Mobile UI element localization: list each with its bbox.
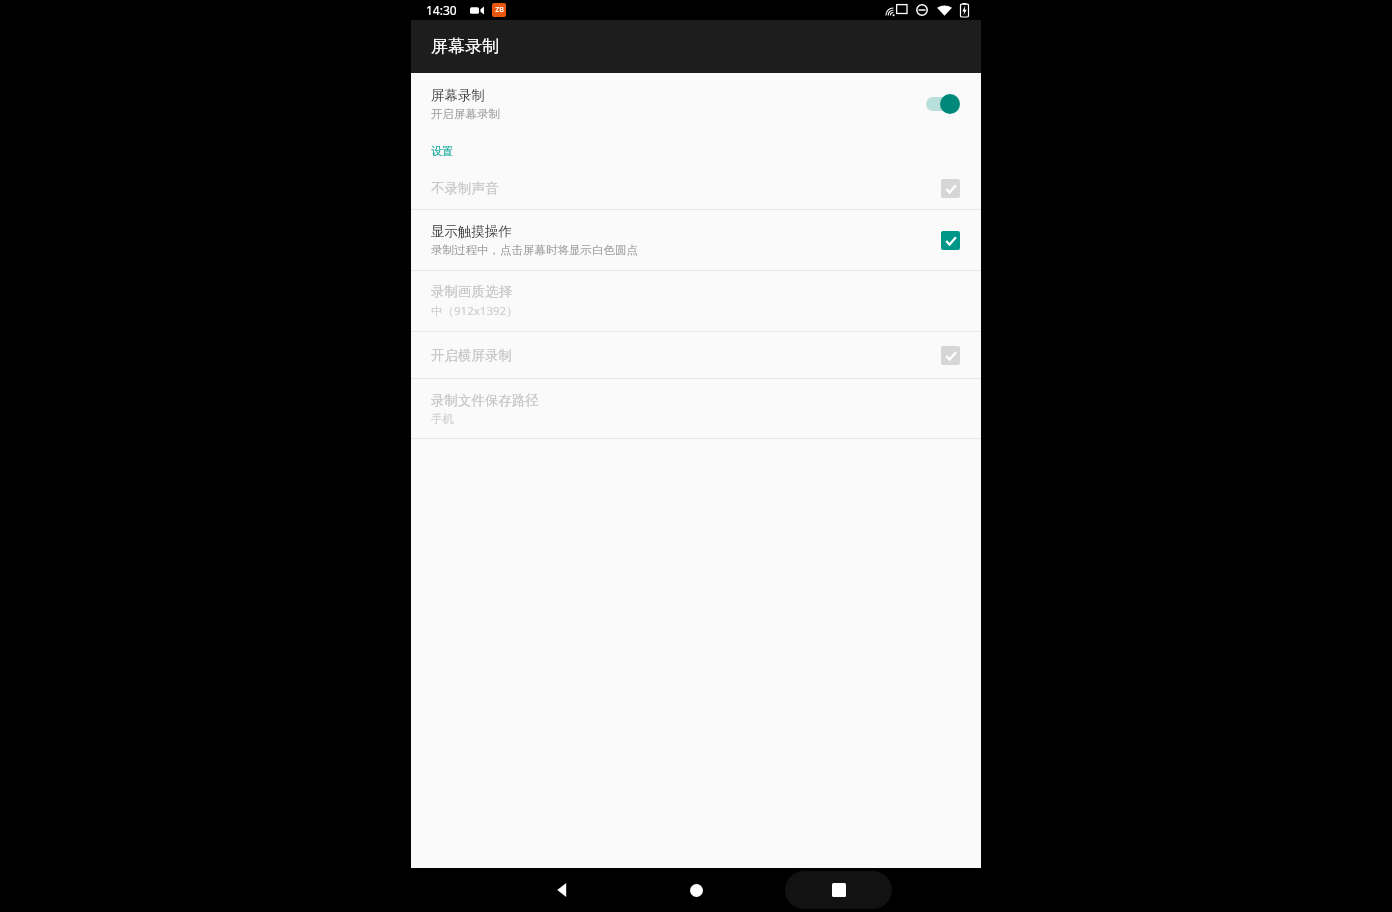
button[interactable]: 已选中: [941, 231, 960, 250]
staticText: 手机: [431, 412, 454, 426]
staticText: 录制画质选择: [431, 283, 512, 300]
staticText: 屏幕录制: [431, 36, 499, 57]
staticText: 屏幕录制: [431, 87, 485, 104]
button[interactable]: Back: [533, 868, 591, 912]
staticText: 中（912x1392）: [431, 303, 518, 319]
button[interactable]: Home: [667, 868, 725, 912]
button[interactable]: 屏幕录制 开关: [926, 94, 960, 114]
button[interactable]: 复选框: [941, 346, 960, 365]
staticText: ZB: [495, 5, 504, 15]
button[interactable]: 不录制声音: [411, 167, 981, 209]
button[interactable]: 录制画质选择: [411, 271, 981, 331]
staticText: 显示触摸操作: [431, 223, 512, 240]
staticText: 开启屏幕录制: [431, 107, 500, 121]
staticText: 录制文件保存路径: [431, 392, 539, 409]
staticText: 不录制声音: [431, 180, 499, 197]
staticText: 开启横屏录制: [431, 347, 512, 364]
button[interactable]: 复选框: [941, 179, 960, 198]
staticText: 14:30: [426, 2, 457, 18]
button[interactable]: 显示触摸操作: [411, 210, 981, 270]
button[interactable]: 开启横屏录制: [411, 332, 981, 378]
staticText: 设置: [431, 144, 453, 158]
staticText: 录制过程中，点击屏幕时将显示白色圆点: [431, 243, 638, 257]
button[interactable]: Recents: [785, 871, 892, 909]
button[interactable]: 录制文件保存路径: [411, 379, 981, 438]
button[interactable]: 屏幕录制: [411, 73, 981, 135]
